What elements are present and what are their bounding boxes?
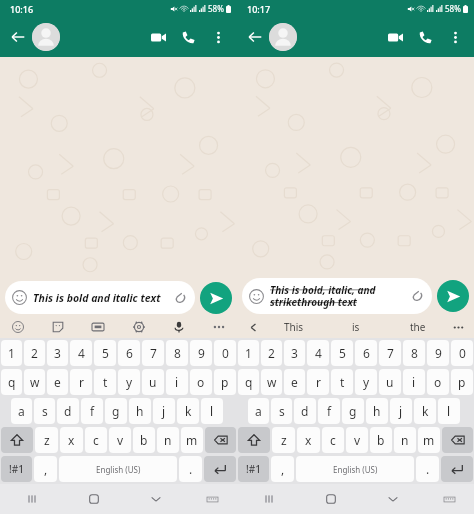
button[interactable]: Recent apps xyxy=(237,484,300,514)
button[interactable]: z xyxy=(35,427,58,453)
button[interactable]: b xyxy=(370,427,392,453)
button[interactable]: s xyxy=(271,398,292,424)
button[interactable]: Recent apps xyxy=(0,484,63,514)
button[interactable]: g xyxy=(105,398,127,424)
button[interactable]: u xyxy=(142,369,164,395)
button[interactable]: 4 xyxy=(70,340,92,366)
button[interactable]: j xyxy=(390,398,412,424)
button[interactable]: 8 xyxy=(403,340,425,366)
button[interactable]: 6 xyxy=(118,340,140,366)
button[interactable]: Emoji xyxy=(248,288,265,305)
button[interactable]: More xyxy=(209,317,229,337)
button[interactable]: h xyxy=(129,398,151,424)
button[interactable]: More options xyxy=(442,24,468,50)
button[interactable]: Switch keyboard xyxy=(424,484,474,514)
button[interactable]: 1 xyxy=(1,340,22,366)
button[interactable]: Symbols xyxy=(238,456,269,482)
button[interactable]: n xyxy=(157,427,179,453)
button[interactable]: f xyxy=(81,398,103,424)
button[interactable]: f xyxy=(318,398,340,424)
button[interactable]: b xyxy=(133,427,155,453)
button[interactable]: English (US) xyxy=(59,456,177,482)
button[interactable]: 2 xyxy=(24,340,45,366)
button[interactable]: x xyxy=(60,427,83,453)
button[interactable]: 3 xyxy=(284,340,305,366)
button[interactable]: Backspace xyxy=(442,427,473,453)
button[interactable]: k xyxy=(177,398,199,424)
button[interactable]: More options xyxy=(205,24,231,50)
button[interactable]: Previous suggestions xyxy=(244,318,262,336)
button[interactable]: This xyxy=(262,316,325,338)
button[interactable]: n xyxy=(394,427,416,453)
button[interactable]: k xyxy=(414,398,436,424)
button[interactable]: Backspace xyxy=(205,427,236,453)
button[interactable]: s xyxy=(34,398,55,424)
button[interactable]: 1 xyxy=(238,340,259,366)
button[interactable]: 6 xyxy=(355,340,377,366)
button[interactable]: Contact profile xyxy=(32,23,60,51)
button[interactable]: GIF xyxy=(88,317,108,337)
button[interactable]: w xyxy=(24,369,45,395)
button[interactable]: 5 xyxy=(331,340,353,366)
button[interactable]: p xyxy=(214,369,236,395)
button[interactable]: r xyxy=(307,369,329,395)
button[interactable]: Keyboard settings xyxy=(129,317,149,337)
button[interactable]: 8 xyxy=(166,340,188,366)
button[interactable]: v xyxy=(346,427,368,453)
button[interactable]: l xyxy=(201,398,223,424)
button[interactable]: is xyxy=(325,316,387,338)
button[interactable]: Send xyxy=(437,280,469,312)
button[interactable]: , xyxy=(271,456,294,482)
button[interactable]: u xyxy=(379,369,401,395)
button[interactable]: Back xyxy=(243,25,267,49)
button[interactable]: e xyxy=(47,369,68,395)
button[interactable]: d xyxy=(57,398,79,424)
button[interactable]: , xyxy=(34,456,57,482)
button[interactable]: Attach xyxy=(171,289,189,307)
button[interactable]: c xyxy=(322,427,344,453)
button[interactable]: Contact profile xyxy=(269,23,297,51)
button[interactable]: 9 xyxy=(427,340,449,366)
button[interactable]: i xyxy=(403,369,425,395)
button[interactable]: r xyxy=(70,369,92,395)
button[interactable]: Stickers xyxy=(48,317,68,337)
button[interactable]: 9 xyxy=(190,340,212,366)
button[interactable]: 0 xyxy=(451,340,473,366)
button[interactable]: . xyxy=(416,456,439,482)
button[interactable]: 3 xyxy=(47,340,68,366)
button[interactable]: t xyxy=(94,369,116,395)
button[interactable]: Home xyxy=(300,484,362,514)
button[interactable]: a xyxy=(11,398,32,424)
button[interactable]: o xyxy=(190,369,212,395)
button[interactable]: Send xyxy=(200,282,232,314)
button[interactable]: English (US) xyxy=(296,456,414,482)
button[interactable]: Enter xyxy=(204,456,236,482)
button[interactable]: 0 xyxy=(214,340,236,366)
button[interactable]: p xyxy=(451,369,473,395)
button[interactable]: v xyxy=(109,427,131,453)
button[interactable]: Emoji keyboard xyxy=(8,317,28,337)
button[interactable]: Symbols xyxy=(1,456,32,482)
button[interactable]: d xyxy=(294,398,316,424)
button[interactable]: x xyxy=(297,427,320,453)
button[interactable]: q xyxy=(238,369,259,395)
button[interactable]: m xyxy=(418,427,440,453)
button[interactable]: Home xyxy=(63,484,125,514)
button[interactable]: Hide keyboard xyxy=(362,484,424,514)
button[interactable]: Voice call xyxy=(175,24,201,50)
button[interactable]: Back xyxy=(6,25,30,49)
button[interactable]: Video call xyxy=(145,24,171,50)
button[interactable]: Emoji xyxy=(242,278,432,314)
button[interactable]: 7 xyxy=(142,340,164,366)
button[interactable]: Emoji xyxy=(11,289,28,306)
button[interactable]: Emoji xyxy=(5,281,195,314)
button[interactable]: Voice call xyxy=(412,24,438,50)
button[interactable]: . xyxy=(179,456,202,482)
button[interactable]: y xyxy=(118,369,140,395)
button[interactable]: Video call xyxy=(382,24,408,50)
button[interactable]: Shift xyxy=(1,427,33,453)
button[interactable]: g xyxy=(342,398,364,424)
button[interactable]: t xyxy=(331,369,353,395)
button[interactable]: m xyxy=(181,427,203,453)
button[interactable]: i xyxy=(166,369,188,395)
